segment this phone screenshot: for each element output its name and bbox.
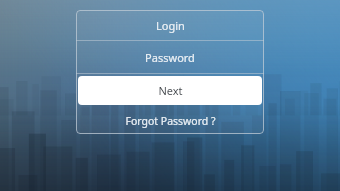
button[interactable]: Forgot Password ? (76, 107, 264, 134)
staticText: Forgot Password ? (125, 114, 216, 128)
button[interactable]: Password (76, 41, 264, 73)
staticText: Next (158, 83, 183, 98)
button[interactable]: Login (76, 10, 264, 40)
staticText: Password (145, 50, 195, 65)
staticText: Login (156, 18, 185, 33)
button[interactable]: Next (78, 76, 262, 105)
